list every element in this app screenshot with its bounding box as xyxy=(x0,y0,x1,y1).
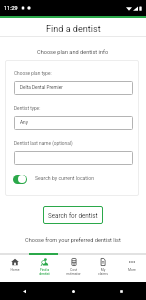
staticText: 11:29 xyxy=(4,5,18,11)
staticText: Dentist type: xyxy=(14,106,41,112)
staticText: Home xyxy=(10,268,20,272)
button[interactable]: More xyxy=(117,255,146,282)
staticText: Find a dentist xyxy=(46,24,101,35)
button[interactable] xyxy=(13,175,27,184)
staticText: Any xyxy=(20,120,28,126)
button[interactable]: Cost estimator xyxy=(59,255,88,282)
staticText: Choose plan type: xyxy=(14,71,52,77)
button[interactable]: Find a dentist xyxy=(30,255,59,282)
staticText: Cost estimator xyxy=(66,268,81,276)
staticText: My claims xyxy=(98,268,108,276)
other: Back xyxy=(22,289,27,294)
staticText: Search by current location xyxy=(35,175,94,181)
staticText: More xyxy=(128,268,136,272)
button[interactable]: Any xyxy=(14,116,133,130)
other: Home xyxy=(71,289,76,294)
other: Recents xyxy=(119,289,124,294)
button[interactable] xyxy=(14,151,133,165)
staticText: Search for dentist xyxy=(48,212,98,219)
button[interactable]: My claims xyxy=(88,255,117,282)
button[interactable]: Search for dentist xyxy=(43,206,103,224)
staticText: Find a dentist xyxy=(39,268,50,276)
staticText: Choose from your preferred dentist list xyxy=(25,237,121,244)
button[interactable]: Home xyxy=(0,255,30,282)
staticText: Choose plan and dentist info xyxy=(37,49,109,56)
staticText: Delta Dental Premier xyxy=(20,85,63,91)
button[interactable]: Delta Dental Premier xyxy=(14,81,133,95)
staticText: Dentist last name (optional) xyxy=(14,141,73,147)
